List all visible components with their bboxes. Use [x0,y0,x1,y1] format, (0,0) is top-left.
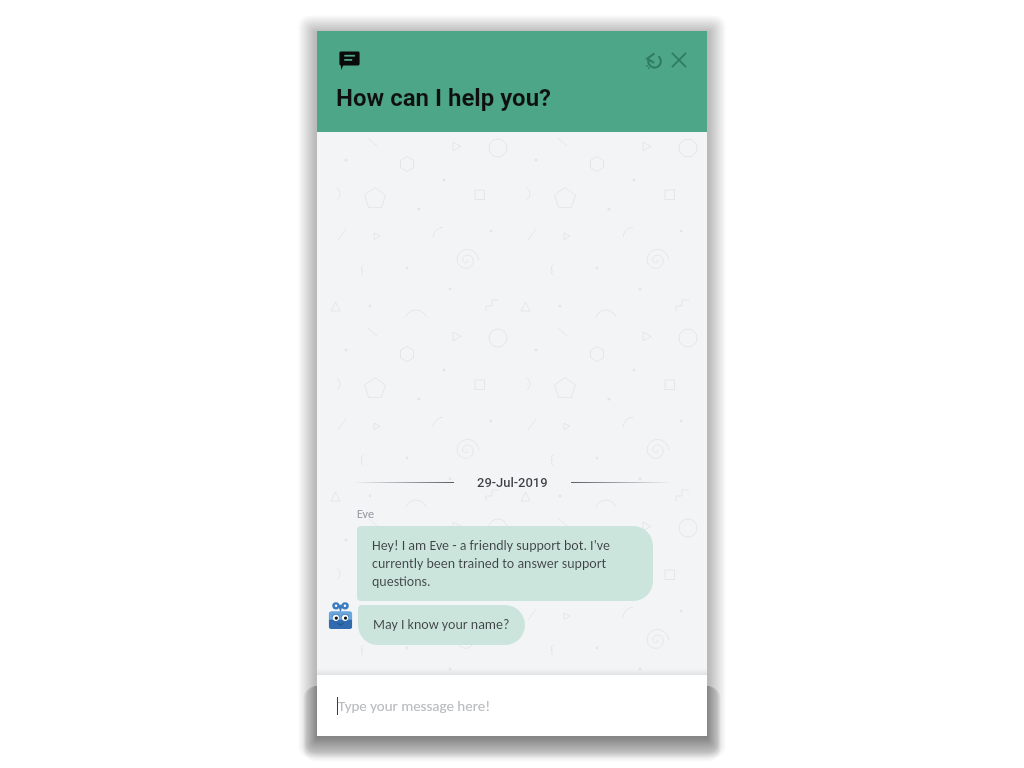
button[interactable]: May I know your name? [358,605,525,645]
button[interactable]: Type your message here! [317,675,707,736]
staticText: Type your message here! [338,697,491,715]
staticText: Eve [357,507,374,522]
button[interactable]: Close [669,50,689,70]
button[interactable]: Hey! I am Eve - a friendly support bot. … [357,526,653,601]
staticText: May I know your name? [373,616,510,633]
staticText: How can I help you? [336,84,552,112]
button[interactable]: Chat [339,49,360,70]
staticText: Hey! I am Eve - a friendly support bot. … [372,537,638,589]
button[interactable]: Restart conversation [644,50,664,70]
staticText: 29-Jul-2019 [477,475,548,490]
